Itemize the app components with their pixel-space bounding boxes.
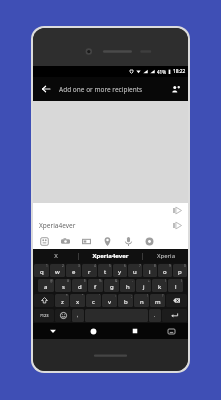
staticText: '	[99, 294, 100, 298]
button[interactable]: 0	[173, 264, 187, 277]
staticText: ,	[77, 312, 79, 319]
staticText: o	[163, 268, 167, 276]
staticText: ;	[131, 294, 132, 298]
staticText: 1	[46, 264, 48, 268]
button[interactable]: ?	[150, 294, 165, 307]
button[interactable]: !	[134, 294, 149, 307]
button[interactable]: .	[149, 309, 161, 322]
staticText: g	[110, 283, 114, 291]
staticText: p	[178, 268, 182, 276]
staticText: 7	[139, 264, 141, 268]
button[interactable]: @	[38, 279, 54, 292]
staticText: d	[78, 283, 82, 291]
staticText: r	[88, 268, 91, 276]
button[interactable]: Enter	[162, 309, 187, 322]
staticText: Xperia4ever	[92, 252, 129, 260]
button[interactable]: (	[152, 279, 167, 292]
button[interactable]: 8	[143, 264, 157, 277]
button[interactable]: #	[55, 279, 71, 292]
staticText: w	[55, 268, 60, 276]
button[interactable]: %	[88, 279, 103, 292]
button[interactable]: X	[33, 249, 78, 263]
staticText: (	[165, 279, 166, 283]
staticText: u	[133, 268, 137, 276]
staticText: q	[40, 268, 44, 276]
button[interactable]: Stickers	[38, 235, 51, 248]
staticText: s	[62, 283, 65, 291]
staticText: h	[126, 283, 130, 291]
staticText: )	[181, 279, 182, 283]
staticText: t	[104, 268, 107, 276]
button[interactable]: "	[70, 294, 85, 307]
staticText: b	[124, 298, 128, 306]
staticText: ?	[162, 294, 164, 298]
staticText: x	[76, 298, 80, 306]
staticText: 9	[169, 264, 171, 268]
staticText: 8	[154, 264, 156, 268]
button[interactable]: 6	[113, 264, 127, 277]
staticText: !	[147, 294, 148, 298]
staticText: %	[99, 279, 102, 283]
staticText: .	[154, 312, 156, 319]
button[interactable]: Voice	[122, 235, 135, 248]
button[interactable]: Xperia4ever	[79, 249, 142, 263]
button[interactable]: Send message	[171, 219, 184, 232]
staticText: +	[148, 279, 150, 283]
staticText: Xperia	[157, 252, 175, 260]
button[interactable]: Back	[39, 82, 53, 96]
staticText: 18:22	[173, 68, 186, 75]
staticText: 2	[62, 264, 64, 268]
button[interactable]: 2	[50, 264, 65, 277]
button[interactable]: 9	[158, 264, 172, 277]
button[interactable]: Hide keyboard	[33, 323, 73, 339]
button[interactable]: Xperia	[143, 249, 188, 263]
staticText: &	[115, 279, 118, 283]
staticText: :	[115, 294, 116, 298]
staticText: Add one or more recipients	[59, 85, 143, 94]
staticText: 5	[109, 264, 111, 268]
button[interactable]: 3	[66, 264, 81, 277]
button[interactable]: 1	[34, 264, 49, 277]
staticText: v	[108, 298, 112, 306]
staticText: ?123	[40, 313, 49, 318]
button[interactable]: $	[72, 279, 87, 292]
button[interactable]: ;	[118, 294, 133, 307]
button[interactable]: 7	[128, 264, 142, 277]
staticText: Xperia4ever	[39, 221, 76, 230]
button[interactable]: )	[168, 279, 183, 292]
staticText: 6	[124, 264, 126, 268]
staticText: k	[158, 283, 162, 291]
button[interactable]: Delete	[166, 294, 187, 307]
button[interactable]: ,	[72, 309, 84, 322]
button[interactable]: &	[104, 279, 119, 292]
button[interactable]: :	[102, 294, 117, 307]
button[interactable]: Recents	[114, 323, 155, 339]
button[interactable]: Gallery	[80, 235, 93, 248]
button[interactable]: -	[120, 279, 135, 292]
button[interactable]: '	[86, 294, 101, 307]
button[interactable]: Shift	[34, 294, 54, 307]
staticText: l	[175, 283, 177, 291]
staticText: a	[44, 283, 48, 291]
button[interactable]: Keyboard switch	[155, 323, 188, 339]
staticText: #	[67, 279, 70, 283]
button[interactable]: Home	[73, 323, 114, 339]
button[interactable]: Location	[101, 235, 114, 248]
staticText: i	[149, 268, 151, 276]
button[interactable]: 5	[98, 264, 112, 277]
button[interactable]: Camera	[59, 235, 72, 248]
button[interactable]: Emoji	[55, 309, 71, 322]
staticText: "	[82, 294, 84, 298]
staticText: j	[143, 283, 145, 291]
button[interactable]: Send	[171, 204, 184, 217]
staticText: e	[72, 268, 76, 276]
button[interactable]: Add contact	[168, 82, 182, 96]
button[interactable]: ?123	[34, 309, 54, 322]
button[interactable]: 4	[82, 264, 97, 277]
button[interactable]: +	[136, 279, 151, 292]
staticText: y	[118, 268, 122, 276]
staticText: -	[132, 279, 134, 283]
button[interactable]: *	[55, 294, 69, 307]
button[interactable]: More	[143, 235, 156, 248]
